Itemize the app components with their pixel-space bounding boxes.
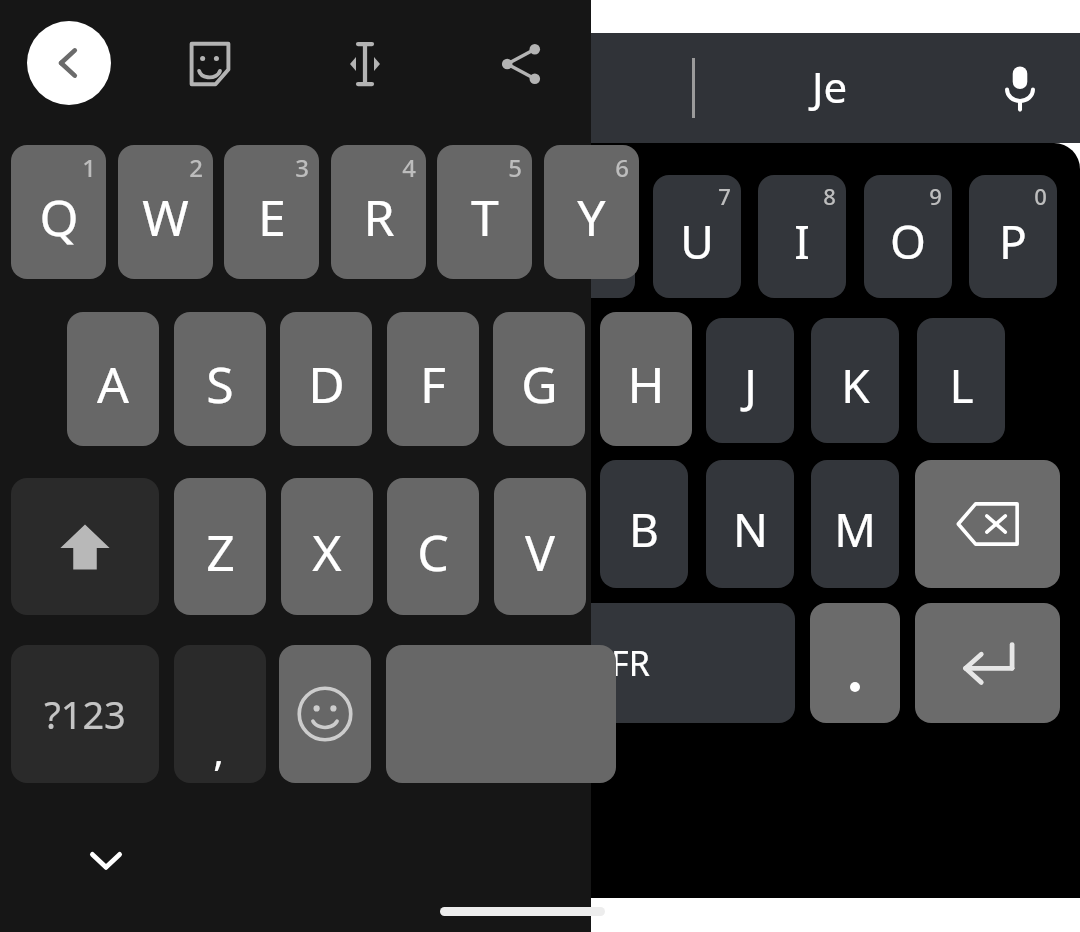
staticText: 1 [82, 151, 96, 184]
staticText: I [794, 210, 810, 273]
button[interactable]: O [864, 175, 952, 298]
button[interactable]: P [969, 175, 1057, 298]
staticText: FR [611, 640, 650, 686]
button[interactable] [386, 645, 616, 783]
staticText: B [629, 498, 659, 561]
button[interactable]: X [281, 478, 373, 615]
button[interactable]: B [600, 460, 688, 588]
button[interactable]: K [811, 318, 899, 443]
staticText: 9 [929, 181, 942, 211]
staticText: T [471, 183, 499, 251]
button[interactable]: Emoji [279, 645, 371, 783]
staticText: X [312, 518, 342, 586]
button[interactable]: L [917, 318, 1005, 443]
staticText: O [890, 210, 926, 273]
staticText: ?123 [44, 688, 126, 740]
button[interactable]: H [600, 312, 692, 446]
button[interactable]: Z [174, 478, 266, 615]
staticText: H [627, 350, 665, 418]
staticText: K [841, 354, 870, 417]
staticText: S [206, 350, 234, 418]
button[interactable]: ?123 [11, 645, 159, 783]
staticText: V [525, 518, 555, 586]
staticText: 2 [189, 151, 203, 184]
button[interactable]: Q [11, 145, 106, 279]
button[interactable]: Backspace [915, 460, 1060, 588]
button[interactable]: H [600, 318, 688, 443]
staticText: Q [39, 183, 79, 251]
button[interactable]: A [67, 312, 159, 446]
staticText: C [417, 518, 449, 586]
button[interactable]: G [493, 312, 585, 446]
staticText: Z [206, 518, 235, 586]
button[interactable]: W [118, 145, 213, 279]
staticText: G [521, 350, 558, 418]
staticText: M [834, 498, 876, 561]
staticText: 3 [295, 151, 309, 184]
button[interactable]: D [280, 312, 372, 446]
staticText: P [999, 210, 1027, 273]
button[interactable]: FR [490, 603, 795, 723]
staticText: 4 [402, 151, 416, 184]
staticText: 6 [615, 151, 629, 184]
button[interactable]: C [387, 478, 479, 615]
button[interactable]: Move cursor [325, 24, 405, 104]
button[interactable]: , [174, 645, 266, 783]
button[interactable]: V [494, 478, 586, 615]
staticText: 5 [508, 151, 522, 184]
staticText: R [363, 183, 395, 251]
button[interactable]: I [758, 175, 846, 298]
button[interactable]: Stickers [170, 24, 250, 104]
staticText: 8 [823, 181, 836, 211]
staticText: U [680, 210, 714, 273]
button[interactable]: Voice input [975, 43, 1065, 133]
button[interactable] [810, 603, 900, 723]
button[interactable]: Y [547, 175, 635, 298]
staticText: Y [577, 183, 606, 251]
button[interactable]: R [331, 145, 426, 279]
button[interactable]: N [706, 460, 794, 588]
staticText: H [627, 354, 662, 417]
staticText: N [733, 498, 768, 561]
staticText: D [308, 350, 345, 418]
staticText: Je [812, 58, 848, 115]
staticText: E [258, 183, 286, 251]
staticText: A [97, 350, 129, 418]
button[interactable]: J [706, 318, 794, 443]
button[interactable]: Shift [11, 478, 159, 615]
button[interactable]: S [174, 312, 266, 446]
button[interactable]: U [653, 175, 741, 298]
staticText: Y [578, 210, 605, 273]
button[interactable]: Back [27, 21, 111, 105]
button[interactable]: Hide keyboard [66, 820, 146, 900]
staticText: 0 [1034, 181, 1047, 211]
button[interactable]: F [387, 312, 479, 446]
staticText: J [744, 354, 757, 417]
button[interactable]: Enter [915, 603, 1060, 723]
staticText: , [213, 723, 224, 777]
staticText: L [949, 354, 974, 417]
button[interactable]: M [811, 460, 899, 588]
staticText: W [142, 183, 189, 251]
staticText: 7 [718, 181, 731, 211]
button[interactable]: E [224, 145, 319, 279]
button[interactable]: Y [544, 145, 639, 279]
staticText: F [420, 350, 446, 418]
button[interactable]: T [437, 145, 532, 279]
button[interactable]: Share [481, 24, 561, 104]
